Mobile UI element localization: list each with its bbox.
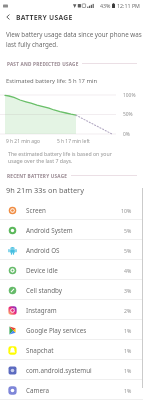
staticText: 9 h 21 min ago — [6, 138, 41, 145]
staticText: Instagram — [26, 306, 57, 315]
staticText: Android OS — [26, 246, 60, 255]
staticText: View battery usage data since your phone… — [6, 30, 143, 49]
button[interactable]: Android OS — [0, 240, 143, 260]
staticText: 1% — [124, 367, 132, 374]
staticText: 3% — [124, 287, 132, 294]
staticText: 4% — [124, 267, 132, 274]
staticText: 5% — [124, 247, 132, 254]
button[interactable]: Instagram — [0, 300, 143, 320]
button[interactable]: Android System — [0, 220, 143, 240]
staticText: 2% — [124, 307, 132, 314]
staticText: 12:11 PM — [117, 2, 140, 9]
staticText: com.android.systemui — [26, 366, 92, 375]
staticText: 1% — [124, 387, 132, 394]
staticText: 100% — [123, 92, 136, 99]
button[interactable]: com.android.systemui — [0, 360, 143, 380]
staticText: BATTERY USAGE — [16, 13, 73, 22]
staticText: 9h 21m 33s on battery — [6, 185, 84, 195]
staticText: Google Play services — [26, 326, 87, 335]
button[interactable]: Device idle — [0, 260, 143, 280]
staticText: 50% — [123, 111, 133, 118]
staticText: 0% — [123, 131, 130, 138]
staticText: 5 h 17 min left — [57, 138, 90, 145]
staticText: 1% — [124, 347, 132, 354]
button[interactable]: Screen — [0, 200, 143, 220]
button[interactable]: Google Play services — [0, 320, 143, 340]
staticText: Cell standby — [26, 286, 62, 295]
staticText: RECENT BATTERY USAGE — [7, 173, 68, 179]
staticText: Camera — [26, 386, 49, 395]
staticText: Snapchat — [26, 346, 54, 355]
button[interactable]: Cell standby — [0, 280, 143, 300]
button[interactable]: Snapchat — [0, 340, 143, 360]
staticText: Screen — [26, 206, 46, 215]
button[interactable]: Back — [0, 10, 16, 24]
staticText: 5% — [124, 227, 132, 234]
staticText: Device idle — [26, 266, 58, 275]
staticText: Estimated battery life: 5 h 17 min — [6, 77, 98, 85]
staticText: 10% — [121, 207, 132, 214]
staticText: 43% — [100, 2, 111, 9]
button[interactable]: Camera — [0, 380, 143, 400]
staticText: PAST AND PREDICTED USAGE — [7, 61, 79, 67]
staticText: The estimated battery life is based on y… — [8, 150, 120, 164]
staticText: 1% — [124, 327, 132, 334]
staticText: Android System — [26, 226, 73, 235]
